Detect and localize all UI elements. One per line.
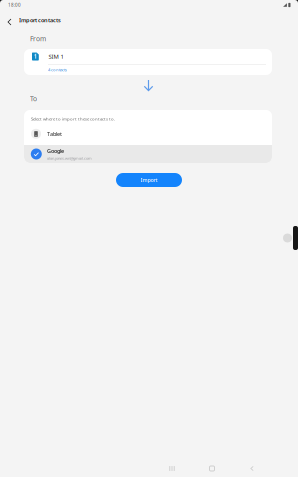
staticText: Google [47,147,64,154]
staticText: 18:00 [8,2,21,8]
button[interactable]: Import [116,173,182,187]
staticText: 4 contacts [48,67,67,72]
staticText: Select where to import these contacts to… [31,116,115,122]
staticText: alan.jones.wn@gmail.com [47,156,92,161]
button[interactable]: Home [192,459,232,477]
button[interactable]: Recents [152,459,192,477]
staticText: From [30,34,46,43]
staticText: To [30,94,37,103]
button[interactable]: SIM 1 [24,49,272,75]
staticText: SIM 1 [48,52,63,60]
staticText: Tablet [47,130,62,137]
staticText: Import [140,176,157,184]
staticText: Import contacts [19,16,61,24]
button[interactable]: Tablet [24,127,272,141]
button[interactable]: Back [0,13,19,27]
button[interactable]: Google [24,145,272,163]
